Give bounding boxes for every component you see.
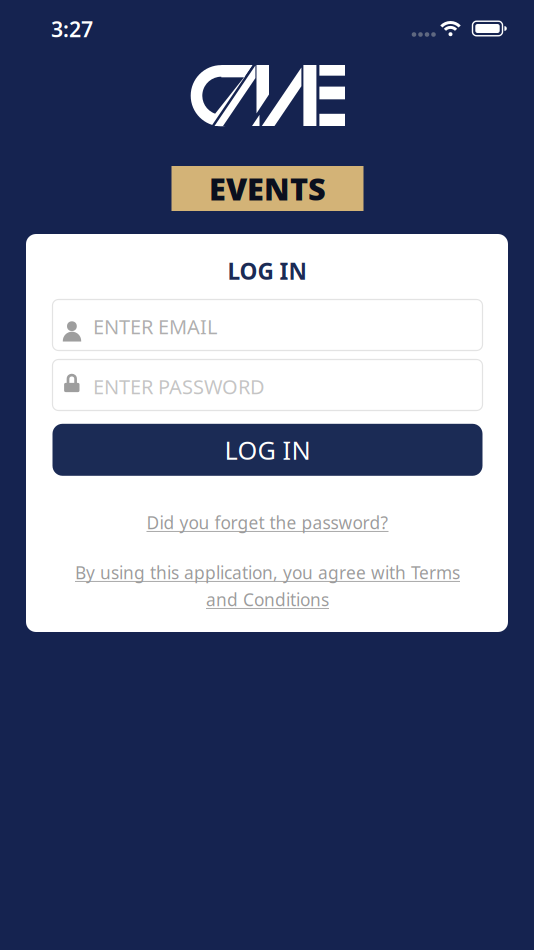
- staticText: and Conditions: [206, 588, 329, 611]
- button[interactable]: ENTER PASSWORD: [52, 359, 482, 410]
- staticText: LOG IN: [224, 433, 310, 467]
- button[interactable]: Did you forget the password?: [146, 511, 388, 534]
- staticText: ENTER PASSWORD: [93, 373, 265, 400]
- button[interactable]: LOG IN: [52, 424, 482, 476]
- staticText: LOG IN: [227, 256, 306, 286]
- button[interactable]: ENTER EMAIL: [52, 299, 482, 350]
- button[interactable]: By using this application, you agree wit…: [75, 561, 460, 611]
- staticText: By using this application, you agree wit…: [75, 561, 460, 584]
- staticText: 3:27: [51, 15, 93, 43]
- staticText: Did you forget the password?: [146, 511, 388, 534]
- staticText: ENTER EMAIL: [93, 313, 217, 340]
- staticText: EVENTS: [209, 168, 326, 209]
